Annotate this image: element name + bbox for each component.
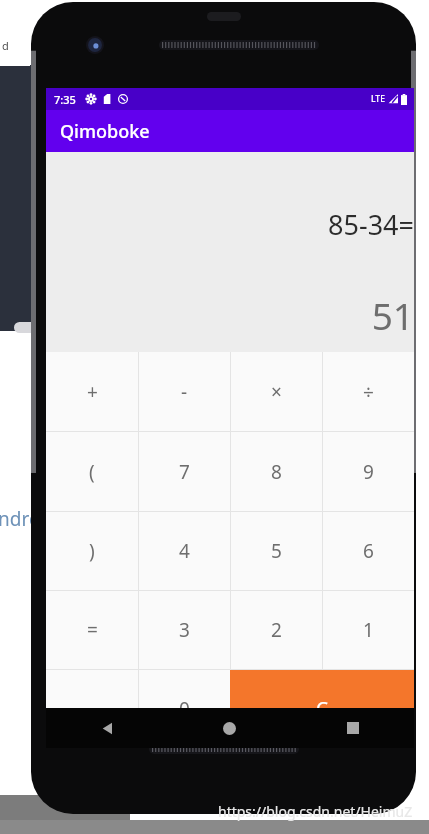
staticText: 7:35 (54, 92, 76, 107)
staticText: 3 (179, 617, 190, 643)
staticText: https://blog.csdn.net/HeimuZ (218, 802, 413, 821)
button[interactable]: . (46, 670, 138, 748)
staticText: 0 (179, 696, 190, 722)
staticText: 9 (363, 459, 374, 485)
button[interactable]: ( (46, 432, 138, 511)
staticText: d (2, 38, 9, 53)
button[interactable]: 9 (322, 432, 414, 511)
button[interactable]: Recent apps (291, 708, 414, 748)
staticText: ) (89, 538, 95, 564)
staticText: C (316, 696, 329, 722)
staticText: 6 (363, 538, 374, 564)
staticText: = (87, 617, 98, 643)
staticText: 51 (371, 290, 414, 340)
button[interactable]: - (138, 352, 230, 431)
button[interactable]: × (230, 352, 322, 431)
staticText: 4 (179, 538, 190, 564)
staticText: × (271, 379, 282, 405)
button[interactable]: 0 (138, 670, 230, 748)
button[interactable]: + (46, 352, 138, 431)
staticText: . (89, 696, 95, 722)
staticText: - (181, 379, 188, 405)
staticText: ÷ (363, 379, 374, 405)
button[interactable]: Home (168, 708, 291, 748)
button[interactable]: 2 (230, 591, 322, 669)
staticText: LTE (371, 93, 385, 105)
button[interactable]: ) (46, 512, 138, 590)
button[interactable]: ÷ (322, 352, 414, 431)
staticText: + (87, 379, 98, 405)
button[interactable]: 6 (322, 512, 414, 590)
button[interactable]: 4 (138, 512, 230, 590)
button[interactable]: 1 (322, 591, 414, 669)
staticText: 7 (179, 459, 190, 485)
staticText: ( (89, 459, 95, 485)
button[interactable]: Back (46, 708, 168, 748)
button[interactable]: 7 (138, 432, 230, 511)
staticText: 85-34= (328, 206, 414, 243)
button[interactable]: 5 (230, 512, 322, 590)
staticText: 1 (363, 617, 374, 643)
button[interactable]: 3 (138, 591, 230, 669)
staticText: 2 (271, 617, 282, 643)
button[interactable]: = (46, 591, 138, 669)
staticText: 8 (271, 459, 282, 485)
button[interactable]: C (230, 670, 414, 748)
button[interactable]: 8 (230, 432, 322, 511)
staticText: Qimoboke (60, 119, 150, 144)
staticText: 5 (271, 538, 282, 564)
staticText: ndro (0, 506, 41, 532)
